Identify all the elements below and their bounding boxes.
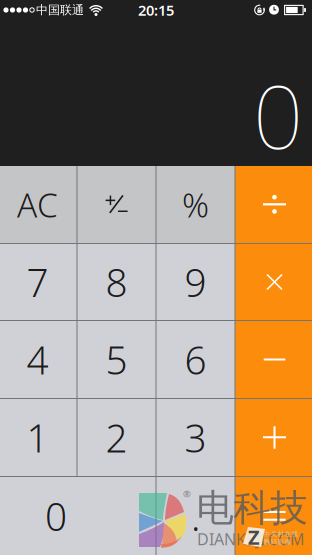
staticText: 3	[184, 412, 206, 463]
staticText: AC	[17, 182, 58, 227]
button[interactable]: 1	[0, 399, 76, 476]
button[interactable]: Subtract	[235, 321, 312, 398]
staticText: .	[191, 490, 200, 542]
staticText: 2	[105, 412, 127, 463]
button[interactable]: 5	[77, 321, 155, 398]
staticText: 0	[45, 490, 67, 542]
staticText: 5	[105, 334, 127, 385]
staticText: 电科技	[196, 485, 307, 531]
button[interactable]: Equals	[235, 477, 312, 555]
button[interactable]: Divide	[235, 166, 312, 243]
button[interactable]: 6	[156, 321, 234, 398]
staticText: 8	[105, 256, 127, 308]
button[interactable]: 3	[156, 399, 234, 476]
button[interactable]: Multiply	[235, 244, 312, 320]
button[interactable]: 4	[0, 321, 76, 398]
staticText: 7	[26, 256, 48, 308]
button[interactable]: %	[156, 166, 234, 243]
staticText: ®	[183, 488, 191, 500]
staticText: 4	[26, 334, 48, 385]
button[interactable]: .	[156, 477, 234, 555]
staticText: 1	[26, 412, 48, 463]
staticText: DIANKEJI.COM	[197, 528, 305, 550]
staticText: 中国联通	[36, 3, 84, 17]
button[interactable]: Plus Minus	[77, 166, 155, 243]
staticText: 6	[184, 334, 206, 385]
button[interactable]: 7	[0, 244, 76, 320]
staticText: 0	[253, 56, 303, 173]
button[interactable]: 0	[0, 477, 155, 555]
button[interactable]: 9	[156, 244, 234, 320]
staticText: Z	[248, 524, 260, 550]
button[interactable]: 8	[77, 244, 155, 320]
staticText: 9	[184, 256, 206, 308]
button[interactable]: Add	[235, 399, 312, 476]
staticText: %	[182, 182, 209, 227]
button[interactable]: 2	[77, 399, 155, 476]
staticText: 20:15	[138, 0, 174, 20]
button[interactable]: AC	[0, 166, 76, 243]
staticText: 中关村在线 数码影像	[263, 530, 298, 546]
